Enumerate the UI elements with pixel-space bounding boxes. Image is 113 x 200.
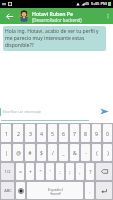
button[interactable]: - [81,144,90,161]
button[interactable]: 3 [25,124,35,142]
staticText: : [59,168,61,175]
staticText: ? [89,168,92,175]
button[interactable]: " [36,163,44,180]
staticText: , [79,168,81,175]
staticText: $ [40,149,43,156]
button[interactable]: $ [37,144,46,161]
staticText: 5 [51,130,54,137]
staticText: 0 [106,130,109,137]
button[interactable]: + [26,163,34,180]
button[interactable]: ' [46,163,54,180]
button[interactable]: ABC [1,182,14,199]
button[interactable]: Enter [96,182,112,199]
staticText: & [73,149,77,156]
button[interactable]: 9 [92,124,101,142]
staticText: - [85,149,87,156]
staticText: 4 [40,130,43,137]
button[interactable]: 8 [81,124,90,142]
staticText: 1/2 [4,169,11,174]
staticText: ( [96,149,98,156]
button[interactable]: ? [86,163,94,180]
staticText: Hotavi Ruben Pe [32,10,73,17]
button[interactable]: Delete [96,163,112,180]
button[interactable]: # [25,144,35,161]
button[interactable]: 1/2 [1,163,14,180]
staticText: ) [107,149,109,156]
staticText: 3 [29,130,32,137]
staticText: ; [69,168,71,175]
button[interactable]: More options [103,8,113,24]
staticText: ABC [4,188,12,193]
button[interactable]: = [16,163,24,180]
staticText: @ [16,149,21,156]
staticText: Escribe un mensaje [3,109,42,115]
staticText: + [29,168,32,175]
staticText: 7 [73,130,76,137]
button[interactable]: / [48,144,57,161]
button[interactable]: , [76,163,84,180]
staticText: Español [48,187,63,192]
staticText: (Desarrollador backend) [32,17,82,23]
staticText: _ [62,149,65,156]
button[interactable]: @ [13,144,23,161]
staticText: 8 [84,130,87,137]
button[interactable]: ( [92,144,101,161]
button[interactable]: 7 [70,124,79,142]
button[interactable]: ) [103,144,112,161]
button[interactable]: _ [59,144,68,161]
button[interactable]: ; [66,163,74,180]
staticText: . [89,187,91,194]
staticText: # [28,149,32,156]
button[interactable]: 5 [48,124,57,142]
button[interactable]: & [70,144,79,161]
button[interactable]: : [56,163,64,180]
staticText: | [5,149,8,156]
button[interactable]: 4 [37,124,46,142]
staticText: " [39,168,42,175]
staticText: 2 [17,130,20,137]
staticText: 1 [5,130,8,137]
button[interactable]: . [85,182,94,199]
button[interactable]: 0 [103,124,112,142]
staticText: 9 [95,130,98,137]
button[interactable]: Send [95,103,113,120]
button[interactable]: Español [27,182,83,199]
staticText: 6 [62,130,65,137]
staticText: = [19,168,22,175]
staticText: 4G [85,2,90,6]
button[interactable]: Emoji [16,182,25,199]
button[interactable]: Back [0,8,18,24]
button[interactable]: 1 [1,124,11,142]
staticText: Hola ing. Hotavi, acabo de ver tu perfil… [5,28,104,49]
staticText: ' [49,168,51,175]
staticText: 5:45 PM [91,1,107,7]
button[interactable]: 2 [13,124,23,142]
button[interactable]: | [1,144,11,161]
button[interactable]: 6 [59,124,68,142]
staticText: / [52,149,54,156]
